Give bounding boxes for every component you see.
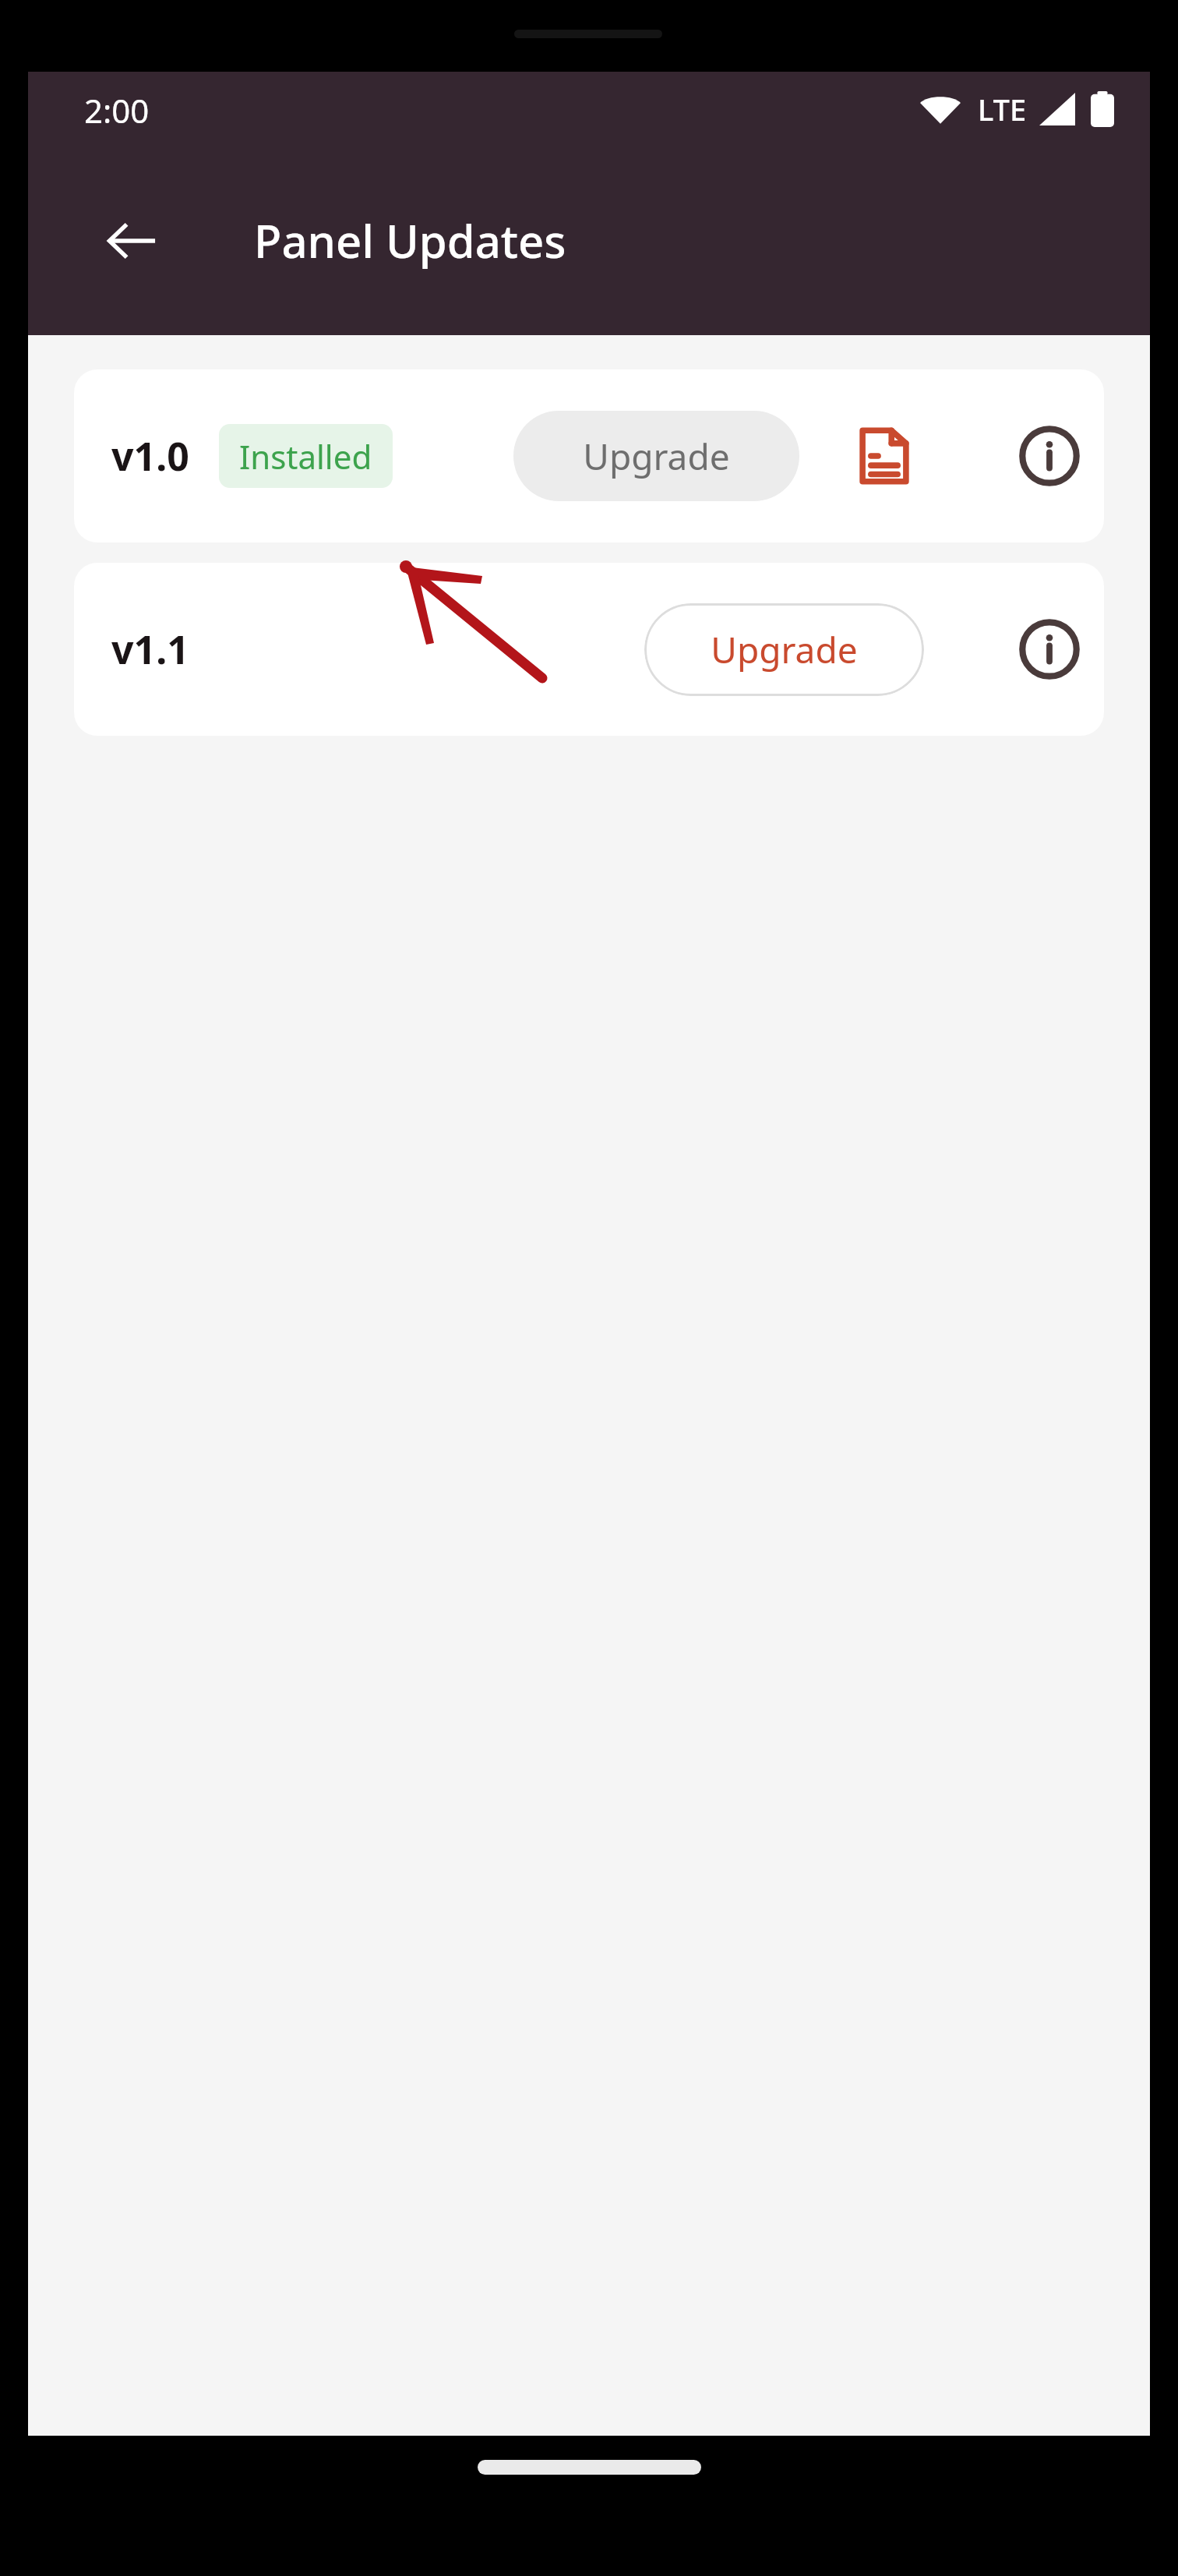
staticText: v1.0	[111, 429, 189, 482]
button[interactable]: v1.0	[74, 369, 1104, 542]
button[interactable]: Information	[1001, 408, 1098, 504]
staticText: LTE	[978, 89, 1027, 129]
button[interactable]: Release notes	[836, 408, 933, 504]
staticText: Panel Updates	[254, 210, 566, 271]
button[interactable]: v1.1	[74, 563, 1104, 736]
button[interactable]: Information	[1001, 601, 1098, 698]
button[interactable]: Back	[76, 185, 188, 297]
button[interactable]: Upgrade	[513, 411, 799, 501]
staticText: v1.1	[111, 623, 189, 676]
staticText: Upgrade	[583, 432, 730, 481]
staticText: 2:00	[84, 88, 150, 133]
button[interactable]: Upgrade	[644, 603, 924, 696]
staticText: Installed	[239, 434, 372, 479]
staticText: Upgrade	[711, 625, 858, 674]
